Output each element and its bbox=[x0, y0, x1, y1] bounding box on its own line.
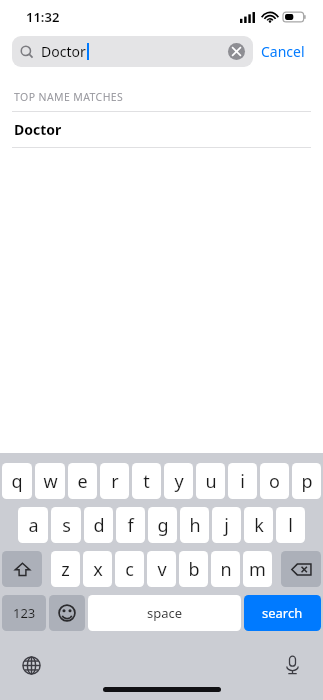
button[interactable]: space bbox=[88, 595, 241, 631]
button[interactable]: z bbox=[51, 551, 80, 587]
staticText: i bbox=[240, 469, 245, 494]
staticText: y bbox=[174, 469, 184, 494]
button[interactable]: Emoji bbox=[49, 595, 85, 631]
button[interactable]: Backspace bbox=[281, 551, 321, 587]
button[interactable]: s bbox=[51, 507, 81, 543]
button[interactable]: d bbox=[84, 507, 113, 543]
staticText: v bbox=[157, 557, 167, 582]
staticText: t bbox=[143, 469, 150, 494]
button[interactable]: b bbox=[179, 551, 208, 587]
staticText: b bbox=[188, 557, 200, 582]
button[interactable]: o bbox=[260, 463, 289, 499]
button[interactable]: i bbox=[228, 463, 257, 499]
button[interactable]: g bbox=[148, 507, 177, 543]
button[interactable]: Clear text bbox=[228, 43, 245, 60]
staticText: m bbox=[249, 557, 266, 582]
staticText: r bbox=[111, 469, 119, 494]
button[interactable]: Doctor bbox=[0, 112, 323, 147]
button[interactable]: Shift bbox=[2, 551, 42, 587]
staticText: TOP NAME MATCHES bbox=[14, 90, 124, 104]
button[interactable]: c bbox=[115, 551, 144, 587]
button[interactable]: q bbox=[2, 463, 32, 499]
staticText: k bbox=[254, 513, 264, 538]
button[interactable]: y bbox=[164, 463, 193, 499]
staticText: space bbox=[147, 604, 183, 622]
staticText: Doctor bbox=[41, 42, 86, 61]
button[interactable]: a bbox=[18, 507, 48, 543]
staticText: j bbox=[224, 513, 229, 538]
staticText: w bbox=[43, 469, 58, 494]
staticText: f bbox=[127, 513, 134, 538]
button[interactable]: m bbox=[243, 551, 272, 587]
button[interactable]: w bbox=[35, 463, 65, 499]
button[interactable]: v bbox=[147, 551, 176, 587]
staticText: z bbox=[61, 557, 70, 582]
button[interactable]: e bbox=[68, 463, 97, 499]
staticText: 123 bbox=[13, 604, 36, 622]
staticText: l bbox=[288, 513, 293, 538]
button[interactable]: 123 bbox=[2, 595, 46, 631]
staticText: Cancel bbox=[261, 42, 305, 61]
staticText: a bbox=[28, 513, 39, 538]
button[interactable]: n bbox=[211, 551, 240, 587]
staticText: s bbox=[62, 513, 71, 538]
button[interactable]: Change keyboard language bbox=[18, 652, 44, 678]
staticText: p bbox=[301, 469, 313, 494]
button[interactable]: x bbox=[83, 551, 112, 587]
staticText: h bbox=[189, 513, 201, 538]
staticText: d bbox=[93, 513, 105, 538]
staticText: g bbox=[157, 513, 169, 538]
button[interactable]: Dictation bbox=[279, 652, 305, 678]
button[interactable]: u bbox=[196, 463, 225, 499]
button[interactable]: l bbox=[276, 507, 305, 543]
staticText: o bbox=[269, 469, 280, 494]
staticText: e bbox=[77, 469, 88, 494]
staticText: x bbox=[93, 557, 103, 582]
staticText: Doctor bbox=[14, 120, 62, 139]
staticText: c bbox=[125, 557, 134, 582]
button[interactable]: f bbox=[116, 507, 145, 543]
button[interactable]: k bbox=[244, 507, 273, 543]
button[interactable]: t bbox=[132, 463, 161, 499]
staticText: search bbox=[262, 604, 303, 622]
staticText: 11:32 bbox=[26, 8, 60, 26]
button[interactable]: h bbox=[180, 507, 209, 543]
button[interactable]: j bbox=[212, 507, 241, 543]
button[interactable]: search bbox=[244, 595, 321, 631]
button[interactable]: p bbox=[292, 463, 321, 499]
button[interactable]: r bbox=[100, 463, 129, 499]
staticText: q bbox=[11, 469, 23, 494]
button[interactable]: Doctor bbox=[12, 36, 253, 67]
staticText: u bbox=[205, 469, 217, 494]
staticText: n bbox=[220, 557, 232, 582]
button[interactable]: Cancel bbox=[253, 36, 313, 67]
